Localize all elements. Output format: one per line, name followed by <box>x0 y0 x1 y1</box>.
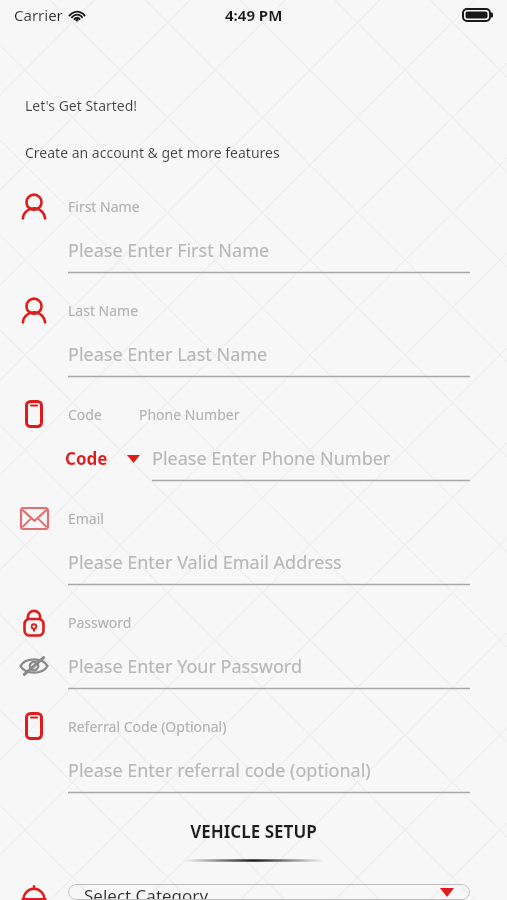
button[interactable]: Select Category <box>68 884 470 900</box>
staticText: Last Name <box>68 301 139 320</box>
staticText: Please Enter Last Name <box>68 342 268 367</box>
button[interactable]: Email <box>0 496 507 600</box>
staticText: 4:49 PM <box>225 5 283 25</box>
staticText: Password <box>68 613 132 632</box>
button[interactable]: Password <box>0 600 507 704</box>
staticText: VEHICLE SETUP <box>190 820 317 843</box>
staticText: Select Category <box>84 884 209 900</box>
staticText: First Name <box>68 197 140 216</box>
staticText: Email <box>68 509 104 528</box>
staticText: Please Enter Phone Number <box>152 446 391 471</box>
staticText: Let's Get Started! <box>25 96 138 115</box>
staticText: Please Enter Valid Email Address <box>68 550 342 575</box>
staticText: Please Enter Your Password <box>68 654 302 679</box>
button[interactable]: First Name <box>0 184 507 288</box>
staticText: Referral Code (Optional) <box>68 717 227 736</box>
staticText: Code <box>68 405 102 424</box>
staticText: Phone Number <box>139 405 240 424</box>
staticText: Please Enter referral code (optional) <box>68 758 371 783</box>
button[interactable]: Please Enter Phone Number <box>152 436 507 480</box>
staticText: Carrier <box>14 5 63 25</box>
button[interactable]: Last Name <box>0 288 507 392</box>
staticText: Please Enter First Name <box>68 238 270 263</box>
button[interactable]: Show password <box>0 644 68 688</box>
button[interactable]: Code <box>65 447 140 470</box>
staticText: Create an account & get more features <box>25 143 280 162</box>
button[interactable]: Referral Code (Optional) <box>0 704 507 808</box>
staticText: Code <box>65 447 108 470</box>
